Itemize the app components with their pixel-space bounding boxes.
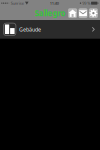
staticText: Sallegro bbox=[34, 8, 65, 18]
staticText: Gebäude bbox=[19, 26, 41, 33]
button[interactable]: Home bbox=[67, 7, 78, 19]
staticText: Sunrise bbox=[11, 0, 24, 6]
button[interactable]: Messages bbox=[78, 7, 88, 19]
staticText: 11:40 bbox=[50, 0, 59, 6]
staticText: 99 % bbox=[82, 0, 90, 6]
button[interactable]: Settings bbox=[88, 7, 99, 19]
button[interactable]: Gebäude bbox=[0, 20, 100, 39]
